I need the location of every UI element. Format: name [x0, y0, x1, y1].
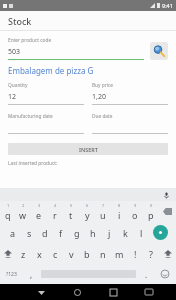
button[interactable]: f: [53, 222, 69, 243]
staticText: 12: [8, 92, 17, 102]
staticText: x: [37, 248, 42, 260]
button[interactable]: ?123: [0, 264, 23, 284]
button[interactable]: Embalagem de pizza G: [8, 65, 94, 76]
button[interactable]: d: [37, 222, 53, 243]
button[interactable]: ?: [143, 243, 159, 264]
staticText: l: [140, 227, 143, 239]
staticText: INSERT: [79, 146, 98, 153]
button[interactable]: 8: [111, 201, 127, 222]
button[interactable]: Emoji: [154, 264, 176, 284]
button[interactable]: 7: [95, 201, 111, 222]
staticText: u: [100, 209, 106, 221]
staticText: 9: [134, 203, 137, 208]
staticText: !: [134, 248, 137, 260]
staticText: ?: [149, 248, 153, 260]
button[interactable]: INSERT: [8, 143, 168, 155]
button[interactable]: Recents: [95, 284, 131, 300]
staticText: s: [27, 227, 32, 239]
staticText: 5: [70, 203, 73, 208]
staticText: m: [115, 248, 124, 260]
button[interactable]: v: [63, 243, 79, 264]
button[interactable]: .: [138, 264, 154, 284]
button[interactable]: Manufacturing date: [8, 113, 84, 134]
button[interactable]: Home: [59, 284, 95, 300]
button[interactable]: g: [69, 222, 85, 243]
button[interactable]: Hide keyboard: [131, 284, 167, 300]
staticText: i: [118, 209, 121, 221]
staticText: f: [59, 227, 63, 239]
staticText: 8: [118, 203, 121, 208]
staticText: 0: [150, 203, 153, 208]
button[interactable]: Due date: [92, 113, 168, 134]
button[interactable]: Back: [23, 284, 59, 300]
staticText: 6: [86, 203, 89, 208]
button[interactable]: 0: [143, 201, 159, 222]
button[interactable]: n: [95, 243, 111, 264]
button[interactable]: s: [21, 222, 37, 243]
button[interactable]: h: [85, 222, 101, 243]
button[interactable]: z: [16, 243, 31, 264]
staticText: g: [74, 227, 80, 239]
staticText: 3: [38, 203, 41, 208]
button[interactable]: 3: [31, 201, 47, 222]
button[interactable]: Shift: [0, 243, 16, 264]
staticText: 4: [54, 203, 57, 208]
staticText: 7: [102, 203, 105, 208]
button[interactable]: 5: [63, 201, 79, 222]
staticText: Enter product code: [8, 37, 52, 44]
button[interactable]: !: [127, 243, 143, 264]
button[interactable]: 9: [127, 201, 143, 222]
button[interactable]: x: [31, 243, 47, 264]
staticText: ?123: [6, 271, 17, 278]
button[interactable]: 1: [0, 201, 15, 222]
staticText: h: [90, 227, 96, 239]
button[interactable]: Enter: [149, 222, 172, 243]
staticText: k: [123, 227, 128, 239]
staticText: .: [145, 269, 148, 280]
button[interactable]: j: [101, 222, 117, 243]
staticText: 2: [22, 203, 25, 208]
staticText: a: [10, 227, 16, 239]
staticText: n: [100, 248, 106, 260]
button[interactable]: 6: [79, 201, 95, 222]
staticText: o: [132, 209, 138, 221]
button[interactable]: a: [4, 222, 21, 243]
staticText: v: [69, 248, 74, 260]
staticText: d: [42, 227, 48, 239]
button[interactable]: Shift: [159, 243, 176, 264]
staticText: Last inserted product:: [8, 160, 58, 167]
button[interactable]: Quantity: [8, 82, 84, 105]
button[interactable]: b: [79, 243, 95, 264]
staticText: Due date: [92, 113, 113, 120]
button[interactable]: c: [47, 243, 63, 264]
staticText: j: [108, 227, 111, 239]
staticText: w: [19, 209, 27, 221]
staticText: 1: [7, 203, 10, 208]
staticText: Quantity: [8, 82, 28, 89]
button[interactable]: Voice input: [161, 190, 171, 200]
staticText: q: [5, 209, 11, 221]
button[interactable]: Buy price: [92, 82, 168, 105]
staticText: y: [85, 209, 90, 221]
button[interactable]: 4: [47, 201, 63, 222]
staticText: t: [69, 209, 73, 221]
staticText: Manufacturing date: [8, 113, 53, 120]
button[interactable]: 2: [15, 201, 31, 222]
button[interactable]: m: [111, 243, 127, 264]
button[interactable]: Backspace: [159, 201, 176, 222]
staticText: c: [53, 248, 58, 260]
staticText: 1,20: [92, 92, 106, 102]
button[interactable]: ,: [23, 264, 39, 284]
staticText: Stock: [8, 15, 32, 27]
button[interactable]: l: [133, 222, 149, 243]
staticText: e: [36, 209, 42, 221]
staticText: p: [148, 209, 154, 221]
staticText: 9:41: [162, 2, 173, 9]
staticText: ,: [30, 269, 33, 280]
staticText: b: [84, 248, 90, 260]
staticText: 503: [8, 47, 21, 57]
staticText: Buy price: [92, 82, 113, 89]
button[interactable]: Search product: [150, 42, 168, 60]
button[interactable]: k: [117, 222, 133, 243]
